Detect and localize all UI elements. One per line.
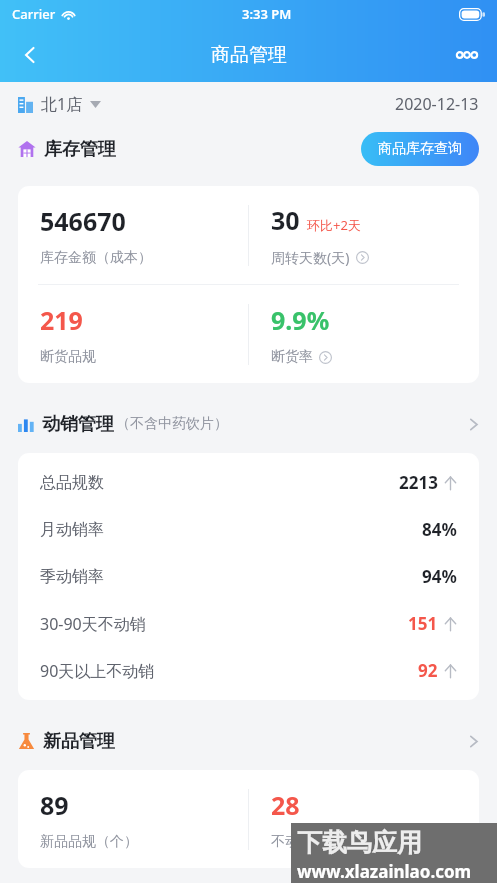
staticText: 下载鸟应用 xyxy=(297,827,422,858)
button[interactable]: 季动销率 xyxy=(18,553,479,600)
button[interactable]: 商品库存查询 xyxy=(361,132,479,166)
staticText: 北1店 xyxy=(41,93,83,115)
staticText: Carrier xyxy=(12,5,56,23)
staticText: 不动销新品（个） xyxy=(271,833,383,851)
button[interactable]: 90天以上不动销 xyxy=(18,647,479,694)
button[interactable]: 28 xyxy=(249,770,479,868)
staticText: 151 xyxy=(408,612,438,635)
staticText: 周转天数(天) xyxy=(271,248,350,267)
button[interactable]: More options xyxy=(445,33,489,77)
staticText: 断货率 xyxy=(271,348,313,366)
staticText: 84% xyxy=(422,518,457,541)
button[interactable]: 总品规数 xyxy=(18,459,479,506)
button[interactable]: 动销管理 xyxy=(0,407,497,441)
staticText: （不含中药饮片） xyxy=(116,415,228,433)
staticText: 546670 xyxy=(40,204,126,238)
staticText: 商品管理 xyxy=(211,43,287,67)
button[interactable]: 30-90天不动销 xyxy=(18,600,479,647)
staticText: 断货品规 xyxy=(40,348,96,366)
staticText: 动销管理 xyxy=(42,413,114,436)
button[interactable]: 2020-12-13 xyxy=(395,93,479,115)
staticText: 3:33 PM xyxy=(242,5,292,23)
button[interactable]: 月动销率 xyxy=(18,506,479,553)
button[interactable]: 9.9% xyxy=(249,285,479,383)
staticText: 库存金额（成本） xyxy=(40,249,152,267)
button[interactable]: 30 xyxy=(249,186,479,284)
button[interactable]: 新品管理 xyxy=(0,724,497,758)
staticText: 新品管理 xyxy=(43,730,115,753)
staticText: 89 xyxy=(40,788,69,822)
staticText: 9.9% xyxy=(271,303,330,337)
button[interactable]: 219 xyxy=(18,285,248,383)
staticText: 219 xyxy=(40,303,83,337)
staticText: 28 xyxy=(271,788,300,822)
staticText: 94% xyxy=(422,565,457,588)
staticText: 总品规数 xyxy=(40,473,104,493)
staticText: 92 xyxy=(418,659,438,682)
staticText: 月动销率 xyxy=(40,520,104,540)
button[interactable]: 89 xyxy=(18,770,248,868)
button[interactable]: 546670 xyxy=(18,186,248,284)
staticText: 商品库存查询 xyxy=(378,140,462,158)
staticText: 新品品规（个） xyxy=(40,833,138,851)
staticText: 季动销率 xyxy=(40,567,104,587)
button[interactable]: 北1店 xyxy=(18,93,101,115)
staticText: 库存管理 xyxy=(44,138,116,161)
staticText: 环比+2天 xyxy=(307,216,361,234)
staticText: www.xlazainlao.com xyxy=(297,860,472,883)
button[interactable]: Back xyxy=(8,33,52,77)
staticText: 30-90天不动销 xyxy=(40,613,146,635)
staticText: 30 xyxy=(271,203,300,237)
staticText: 2213 xyxy=(399,471,438,494)
staticText: 90天以上不动销 xyxy=(40,660,155,682)
